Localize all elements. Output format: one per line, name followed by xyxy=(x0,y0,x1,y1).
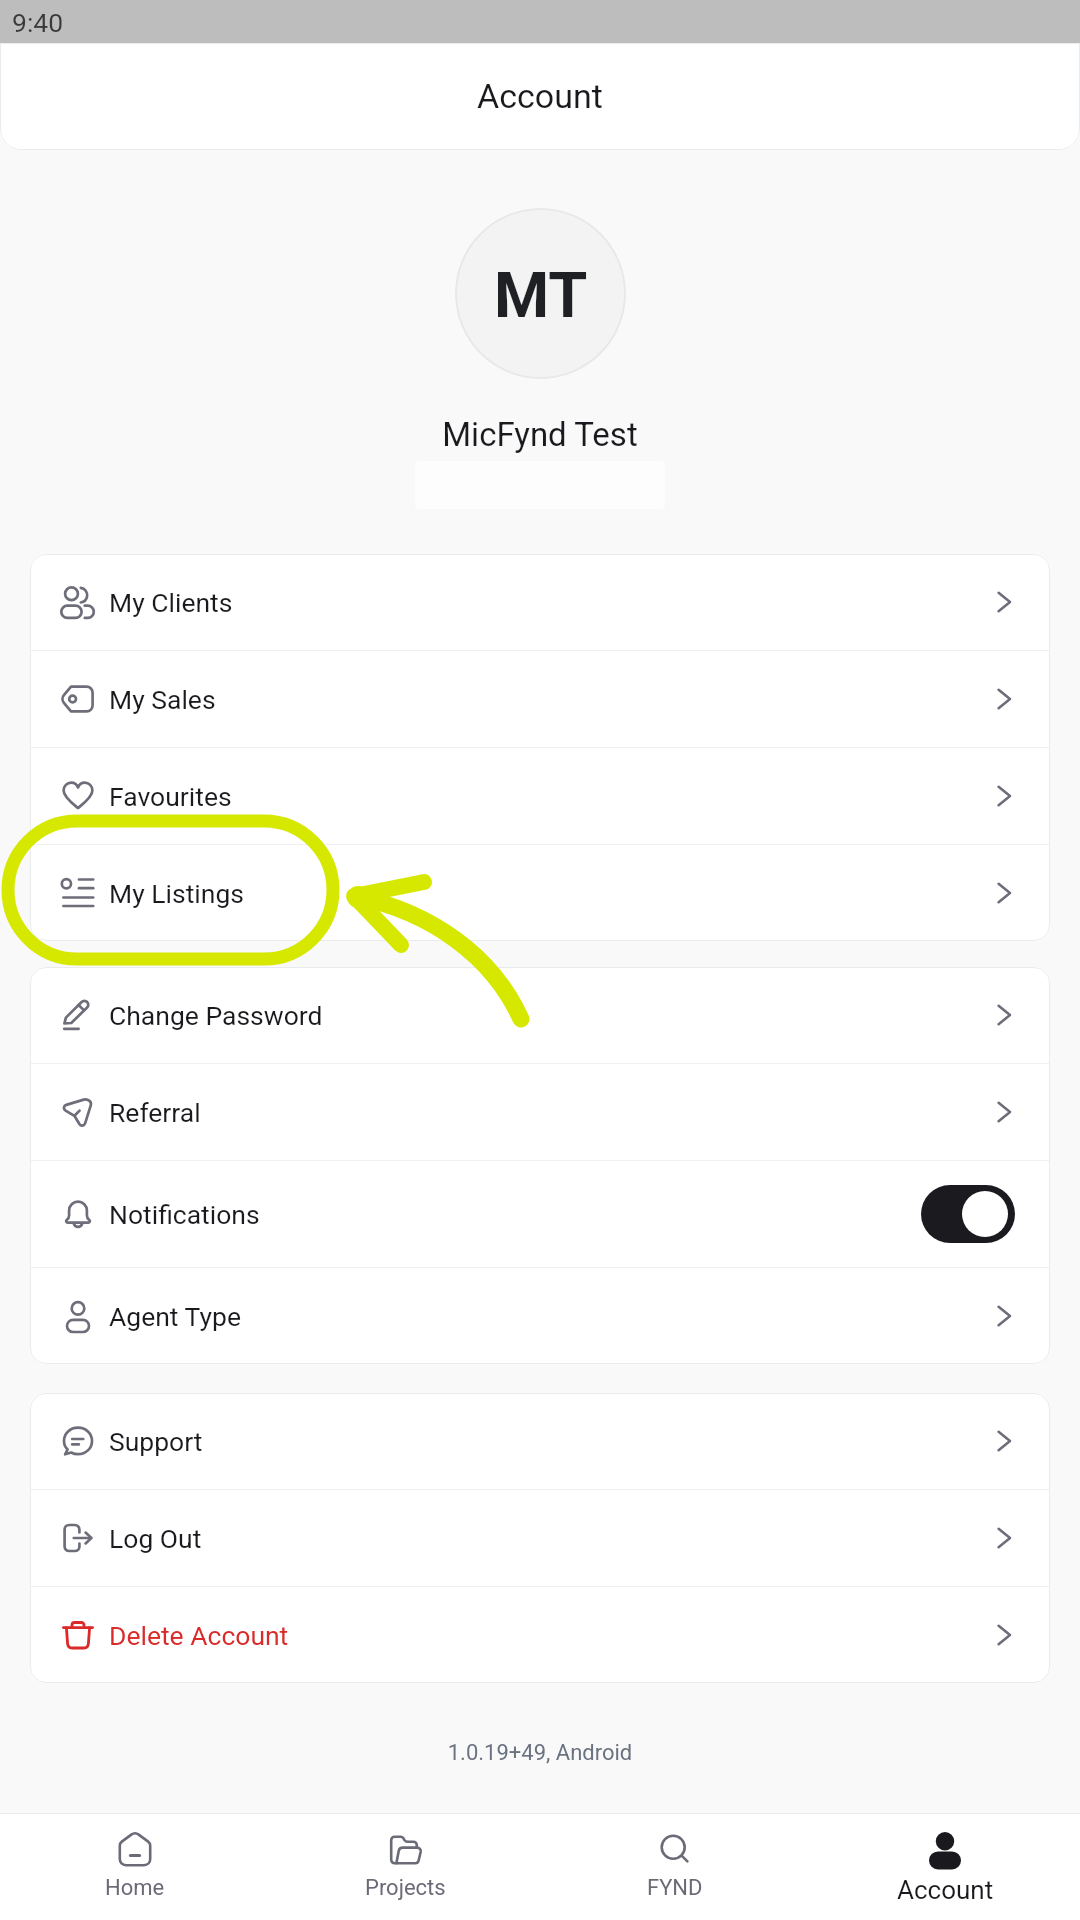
staticText: Notifications xyxy=(109,1199,260,1230)
button[interactable]: Home xyxy=(0,1814,270,1901)
staticText: Change Password xyxy=(109,1000,323,1031)
staticText: Favourites xyxy=(109,781,232,812)
staticText: Log Out xyxy=(109,1523,202,1554)
button[interactable]: Account xyxy=(810,1814,1080,1905)
button[interactable]: Delete Account xyxy=(30,1587,1050,1683)
staticText: Delete Account xyxy=(109,1620,289,1651)
staticText: MicFynd Test xyxy=(0,415,1080,454)
button[interactable]: Change Password xyxy=(30,967,1050,1063)
staticText: My Listings xyxy=(109,878,244,909)
staticText: My Sales xyxy=(109,684,216,715)
button[interactable]: Referral xyxy=(30,1064,1050,1160)
staticText: Home xyxy=(105,1875,165,1901)
button[interactable]: My Clients xyxy=(30,554,1050,650)
button[interactable]: Log Out xyxy=(30,1490,1050,1586)
button[interactable]: Projects xyxy=(270,1814,540,1901)
button[interactable]: FYND xyxy=(540,1814,810,1901)
button[interactable]: Notifications xyxy=(30,1161,1050,1267)
button[interactable]: My Sales xyxy=(30,651,1050,747)
staticText: Agent Type xyxy=(109,1301,241,1332)
staticText: 9:40 xyxy=(12,7,64,38)
staticText: MT xyxy=(494,259,588,333)
staticText: FYND xyxy=(647,1875,703,1901)
staticText: Referral xyxy=(109,1097,201,1128)
staticText: 1.0.19+49, Android xyxy=(0,1740,1080,1766)
staticText: Account xyxy=(477,76,603,116)
button[interactable]: My Listings xyxy=(30,845,1050,941)
staticText: My Clients xyxy=(109,587,233,618)
staticText: Support xyxy=(109,1426,203,1457)
staticText: Projects xyxy=(365,1875,446,1901)
button[interactable]: Favourites xyxy=(30,748,1050,844)
button[interactable]: Support xyxy=(30,1393,1050,1489)
button[interactable]: Toggle notifications xyxy=(921,1185,1015,1243)
button[interactable]: Agent Type xyxy=(30,1268,1050,1364)
staticText: Account xyxy=(897,1875,994,1905)
